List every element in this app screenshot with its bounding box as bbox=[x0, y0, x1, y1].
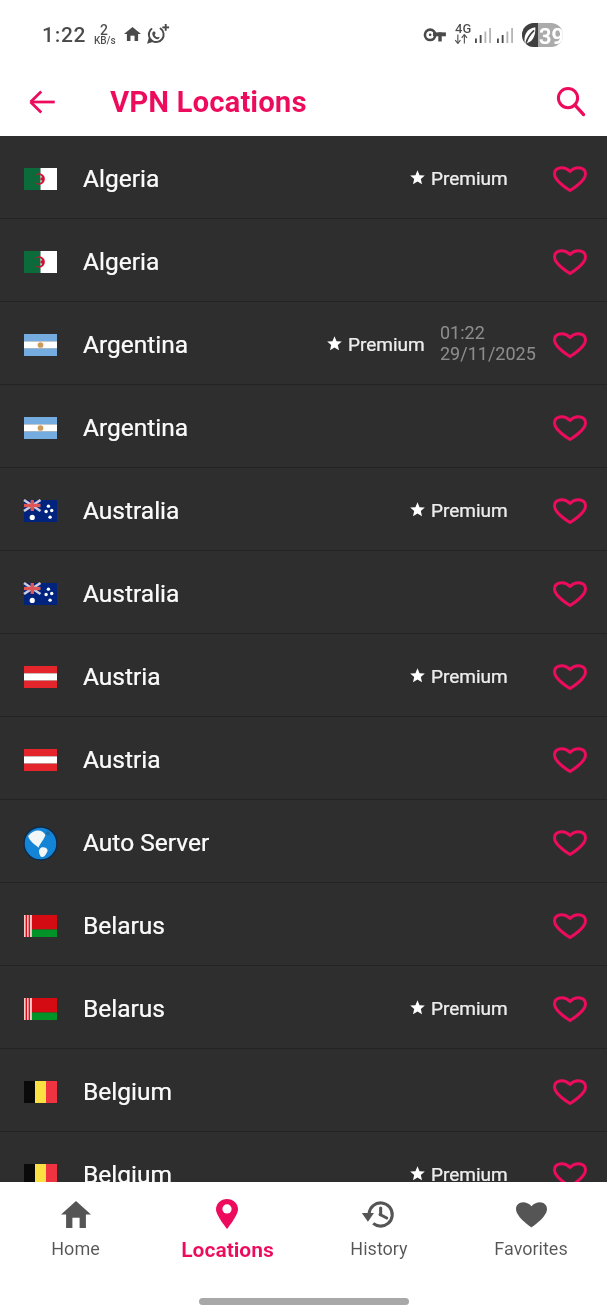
staticText: Premium bbox=[348, 333, 425, 355]
button[interactable]: Auto Server bbox=[0, 800, 607, 882]
button[interactable]: Favorite bbox=[548, 1068, 592, 1112]
staticText: Belgium bbox=[83, 1160, 172, 1182]
staticText: Auto Server bbox=[83, 828, 210, 857]
button[interactable]: Favorite bbox=[548, 321, 592, 365]
staticText: Premium bbox=[431, 665, 508, 687]
staticText: Home bbox=[51, 1238, 100, 1259]
staticText: Premium bbox=[431, 1163, 508, 1182]
button[interactable]: Favorite bbox=[548, 570, 592, 614]
button[interactable]: Belarus bbox=[0, 966, 607, 1048]
button[interactable]: Home bbox=[0, 1182, 151, 1259]
button[interactable]: Favorite bbox=[548, 1151, 592, 1182]
button[interactable]: Belgium bbox=[0, 1049, 607, 1131]
button[interactable]: Australia bbox=[0, 468, 607, 550]
button[interactable]: Back bbox=[18, 78, 66, 126]
button[interactable]: Austria bbox=[0, 717, 607, 799]
button[interactable]: Favorite bbox=[548, 819, 592, 863]
button[interactable]: Australia bbox=[0, 551, 607, 633]
button[interactable]: Favorite bbox=[548, 902, 592, 946]
staticText: 2 bbox=[100, 22, 108, 38]
staticText: 39 bbox=[539, 24, 565, 48]
staticText: Belarus bbox=[83, 994, 165, 1023]
button[interactable]: History bbox=[303, 1182, 455, 1259]
button[interactable]: Favorite bbox=[548, 653, 592, 697]
staticText: Argentina bbox=[83, 330, 189, 359]
button[interactable]: Favorite bbox=[548, 487, 592, 531]
button[interactable]: Favorite bbox=[548, 736, 592, 780]
staticText: Favorites bbox=[494, 1238, 568, 1259]
button[interactable]: Argentina bbox=[0, 302, 607, 384]
staticText: Australia bbox=[83, 579, 180, 608]
staticText: History bbox=[350, 1238, 408, 1259]
staticText: Premium bbox=[431, 499, 508, 521]
staticText: Austria bbox=[83, 662, 161, 691]
button[interactable]: Favorites bbox=[455, 1182, 607, 1259]
button[interactable]: Locations bbox=[151, 1182, 303, 1263]
button[interactable]: Argentina bbox=[0, 385, 607, 467]
staticText: KB/s bbox=[94, 35, 116, 47]
staticText: Belarus bbox=[83, 911, 165, 940]
button[interactable]: Favorite bbox=[548, 404, 592, 448]
staticText: 01:22 29/11/2025 bbox=[440, 322, 536, 364]
staticText: 1:22 bbox=[42, 23, 87, 48]
button[interactable]: Search bbox=[547, 78, 595, 126]
staticText: Australia bbox=[83, 496, 180, 525]
staticText: Argentina bbox=[83, 413, 189, 442]
staticText: VPN Locations bbox=[110, 85, 307, 120]
button[interactable]: Favorite bbox=[548, 985, 592, 1029]
button[interactable]: Algeria bbox=[0, 219, 607, 301]
staticText: Belgium bbox=[83, 1077, 172, 1106]
staticText: Austria bbox=[83, 745, 161, 774]
button[interactable]: Favorite bbox=[548, 155, 592, 199]
button[interactable]: Belgium bbox=[0, 1132, 607, 1182]
staticText: 4G bbox=[455, 21, 472, 36]
staticText: Algeria bbox=[83, 164, 160, 193]
staticText: Algeria bbox=[83, 247, 160, 276]
staticText: Locations bbox=[181, 1238, 274, 1263]
button[interactable]: Algeria bbox=[0, 136, 607, 218]
staticText: Premium bbox=[431, 997, 508, 1019]
button[interactable]: Belarus bbox=[0, 883, 607, 965]
button[interactable]: Favorite bbox=[548, 238, 592, 282]
staticText: Premium bbox=[431, 167, 508, 189]
button[interactable]: Austria bbox=[0, 634, 607, 716]
